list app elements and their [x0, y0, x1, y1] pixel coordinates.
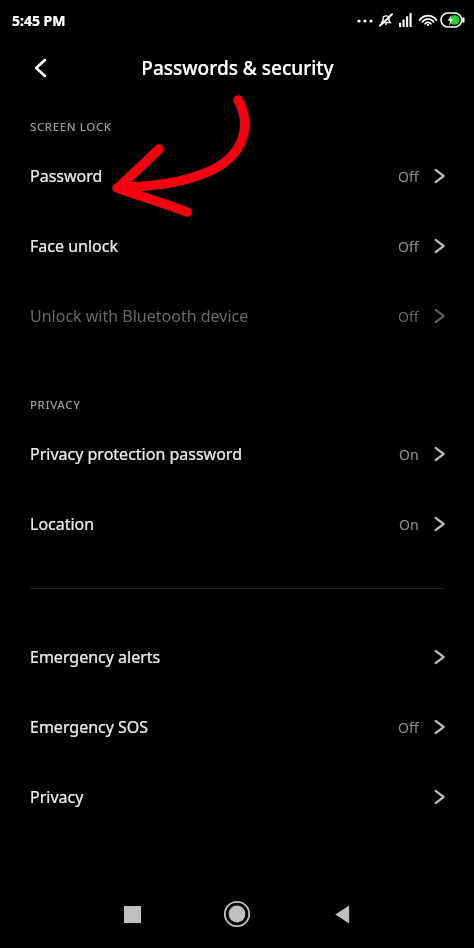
staticText: Emergency alerts: [30, 646, 161, 668]
button[interactable]: Location: [0, 489, 474, 559]
staticText: Privacy protection password: [30, 443, 242, 465]
button[interactable]: Privacy: [0, 762, 474, 832]
button[interactable]: Back: [18, 45, 64, 91]
staticText: Face unlock: [30, 235, 118, 257]
button[interactable]: Privacy protection password: [0, 419, 474, 489]
staticText: On: [399, 515, 419, 534]
staticText: Off: [398, 307, 419, 326]
staticText: Off: [398, 167, 419, 186]
button[interactable]: Emergency alerts: [0, 622, 474, 692]
button[interactable]: Face unlock: [0, 211, 474, 281]
staticText: PRIVACY: [30, 397, 81, 413]
staticText: Off: [398, 718, 419, 737]
button[interactable]: Password: [0, 141, 474, 211]
button[interactable]: Back: [318, 890, 366, 938]
staticText: 5:45 PM: [12, 11, 66, 30]
button[interactable]: Home: [213, 890, 261, 938]
staticText: On: [399, 445, 419, 464]
button[interactable]: Unlock with Bluetooth device: [0, 281, 474, 351]
staticText: Privacy: [30, 786, 84, 808]
staticText: Passwords & security: [141, 55, 334, 81]
staticText: Unlock with Bluetooth device: [30, 305, 249, 327]
button[interactable]: Recent apps: [108, 890, 156, 938]
staticText: SCREEN LOCK: [30, 119, 112, 135]
staticText: Password: [30, 165, 103, 187]
staticText: Off: [398, 237, 419, 256]
button[interactable]: Emergency SOS: [0, 692, 474, 762]
staticText: Emergency SOS: [30, 716, 149, 738]
staticText: Location: [30, 513, 95, 535]
